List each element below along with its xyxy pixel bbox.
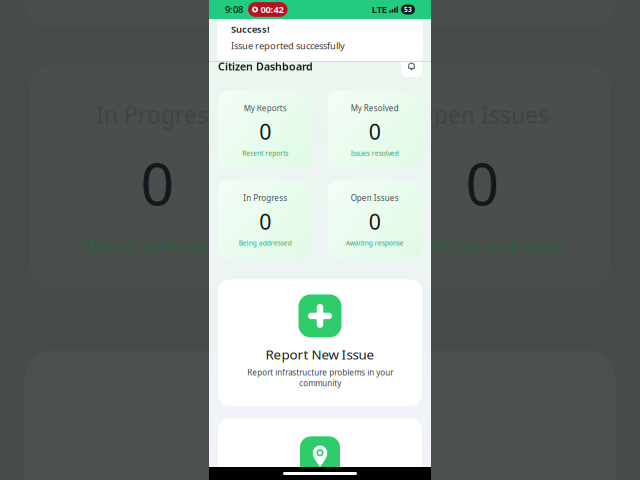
staticText: 0 (259, 117, 271, 146)
staticText: 0 (259, 207, 271, 235)
staticText: Open Issues (351, 193, 399, 203)
button[interactable]: My Reports (218, 91, 312, 169)
staticText: 53 (404, 5, 412, 14)
button[interactable]: Notifications (401, 56, 422, 77)
staticText: In Progress (96, 100, 219, 130)
staticText: My Reports (244, 103, 287, 113)
staticText: 00:42 (260, 3, 283, 16)
staticText: 0 (140, 144, 174, 222)
staticText: In Progress (243, 193, 287, 203)
staticText: Report infrastructure problems in your c… (247, 367, 393, 388)
button[interactable]: Nearby Issues (218, 418, 422, 480)
staticText: 0 (369, 117, 381, 146)
staticText: Success! (231, 23, 270, 35)
staticText: Report New Issue (265, 345, 374, 363)
staticText: Citizen Dashboard (218, 59, 313, 73)
staticText: 0 (369, 207, 381, 235)
button[interactable]: In Progress (218, 181, 312, 258)
staticText: My Resolved (351, 103, 399, 113)
staticText: Issues resolved (351, 149, 399, 158)
staticText: Being addressed (239, 238, 292, 247)
staticText: Open Issues (416, 100, 549, 130)
staticText: Recent reports (242, 149, 288, 158)
button[interactable]: My Resolved (327, 91, 422, 169)
staticText: Awaiting response (401, 233, 564, 257)
button[interactable]: Open Issues (327, 181, 422, 258)
staticText: Awaiting response (346, 238, 404, 247)
staticText: Issue reported successfully (231, 39, 345, 52)
staticText: Being addressed (84, 233, 230, 257)
staticText: LTE (372, 3, 387, 16)
staticText: 0 (465, 144, 499, 222)
staticText: 9:08 (225, 3, 243, 16)
button[interactable]: Report New Issue (218, 279, 422, 406)
